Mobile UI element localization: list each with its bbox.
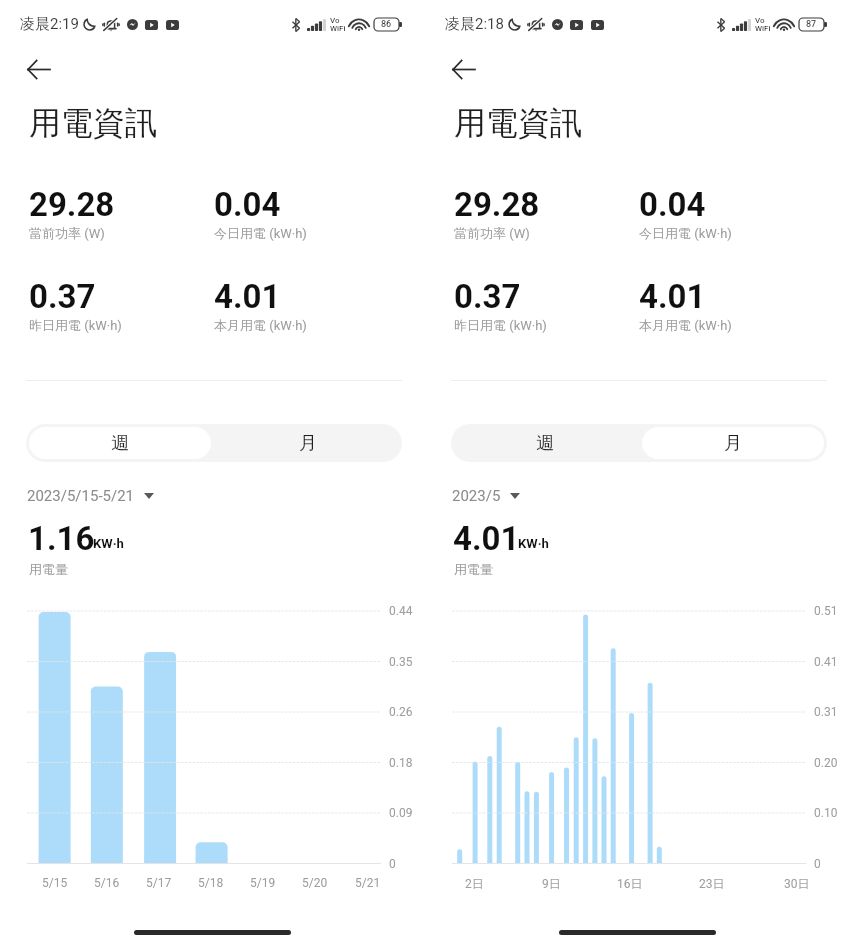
staticText: 87 (806, 19, 817, 30)
staticText: 月 (724, 432, 742, 455)
staticText: 0.37 (29, 277, 96, 316)
staticText: 週 (111, 432, 129, 455)
staticText: 0.26 (389, 705, 413, 719)
staticText: 4.01 (639, 277, 706, 316)
staticText: 0.44 (389, 604, 413, 618)
staticText: 1.16 (28, 519, 95, 558)
staticText: 5/20 (302, 876, 328, 890)
staticText: 當前功率 (W) (29, 225, 105, 241)
staticText: 0.09 (389, 806, 413, 820)
staticText: 0.10 (814, 806, 838, 820)
staticText: 86 (381, 19, 392, 30)
button[interactable]: Back (14, 45, 62, 93)
staticText: 2日 (465, 876, 484, 891)
staticText: 5/19 (250, 876, 276, 890)
button[interactable]: 2023/5/15-5/21 (27, 487, 154, 505)
staticText: WiFi (330, 24, 346, 33)
staticText: 9日 (542, 876, 561, 891)
button[interactable]: Back (439, 45, 487, 93)
staticText: 0 (814, 857, 821, 871)
staticText: 週 (536, 432, 554, 455)
staticText: 昨日用電 (kW·h) (454, 317, 547, 333)
staticText: 0.04 (639, 185, 706, 224)
staticText: 4.01 (453, 519, 520, 558)
staticText: 用電資訊 (454, 103, 582, 143)
staticText: KW·h (93, 536, 124, 551)
staticText: 當前功率 (W) (454, 225, 530, 241)
staticText: 5/16 (94, 876, 120, 890)
staticText: 用電資訊 (29, 103, 157, 143)
staticText: 4.01 (214, 277, 281, 316)
staticText: KW·h (518, 536, 549, 551)
staticText: 2023/5 (452, 487, 501, 505)
staticText: 5/18 (198, 876, 224, 890)
staticText: 0.31 (814, 705, 838, 719)
staticText: 0 (389, 857, 396, 871)
staticText: 29.28 (29, 185, 115, 224)
staticText: Vo (330, 16, 340, 25)
staticText: 0.18 (389, 756, 413, 770)
staticText: 本月用電 (kW·h) (214, 317, 307, 333)
button[interactable]: 週 (29, 427, 211, 459)
staticText: 用電量 (29, 561, 68, 577)
staticText: 本月用電 (kW·h) (639, 317, 732, 333)
staticText: 5/15 (42, 876, 68, 890)
staticText: 2023/5/15-5/21 (27, 487, 135, 505)
button[interactable]: 2023/5 (452, 487, 520, 505)
staticText: 0.20 (814, 756, 838, 770)
staticText: 0.04 (214, 185, 281, 224)
staticText: 16日 (617, 876, 643, 891)
button[interactable]: 月 (217, 427, 399, 459)
staticText: 29.28 (454, 185, 540, 224)
staticText: 月 (299, 432, 317, 455)
staticText: 凌晨2:19 (20, 15, 79, 34)
staticText: 23日 (699, 876, 725, 891)
staticText: Vo (755, 16, 765, 25)
staticText: 用電量 (454, 561, 493, 577)
staticText: WiFi (755, 24, 771, 33)
staticText: 今日用電 (kW·h) (214, 225, 307, 241)
staticText: 凌晨2:18 (445, 15, 504, 34)
staticText: 0.41 (814, 655, 838, 669)
staticText: 今日用電 (kW·h) (639, 225, 732, 241)
staticText: 0.51 (814, 604, 838, 618)
staticText: 5/21 (355, 876, 381, 890)
button[interactable]: 週 (454, 427, 636, 459)
staticText: 0.35 (389, 655, 413, 669)
button[interactable]: 月 (642, 427, 824, 459)
staticText: 30日 (784, 876, 810, 891)
staticText: 0.37 (454, 277, 521, 316)
staticText: 昨日用電 (kW·h) (29, 317, 122, 333)
staticText: 5/17 (146, 876, 172, 890)
